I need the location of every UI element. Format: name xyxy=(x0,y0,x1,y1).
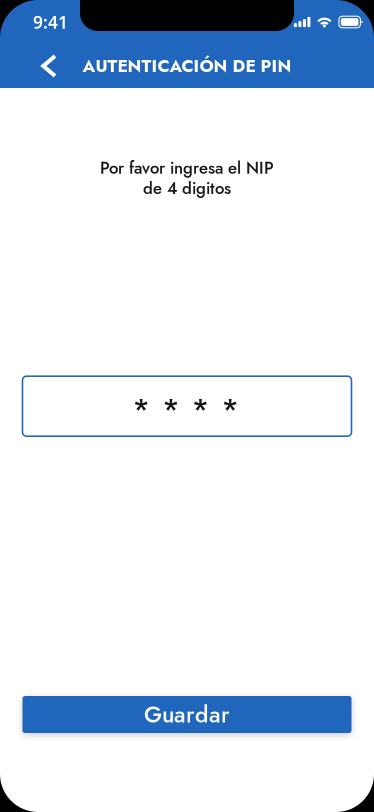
staticText: * xyxy=(192,388,209,431)
staticText: Por favor ingresa el NIP xyxy=(100,156,274,180)
staticText: Guardar xyxy=(144,698,230,731)
staticText: AUTENTICACIÓN DE PIN xyxy=(82,53,291,78)
staticText: * xyxy=(133,388,150,431)
staticText: * xyxy=(221,388,238,431)
staticText: de 4 digitos xyxy=(143,176,231,200)
staticText: 9:41 xyxy=(33,10,68,33)
button[interactable]: Back xyxy=(29,45,69,87)
button[interactable]: Guardar xyxy=(22,696,351,733)
staticText: * xyxy=(162,388,179,431)
